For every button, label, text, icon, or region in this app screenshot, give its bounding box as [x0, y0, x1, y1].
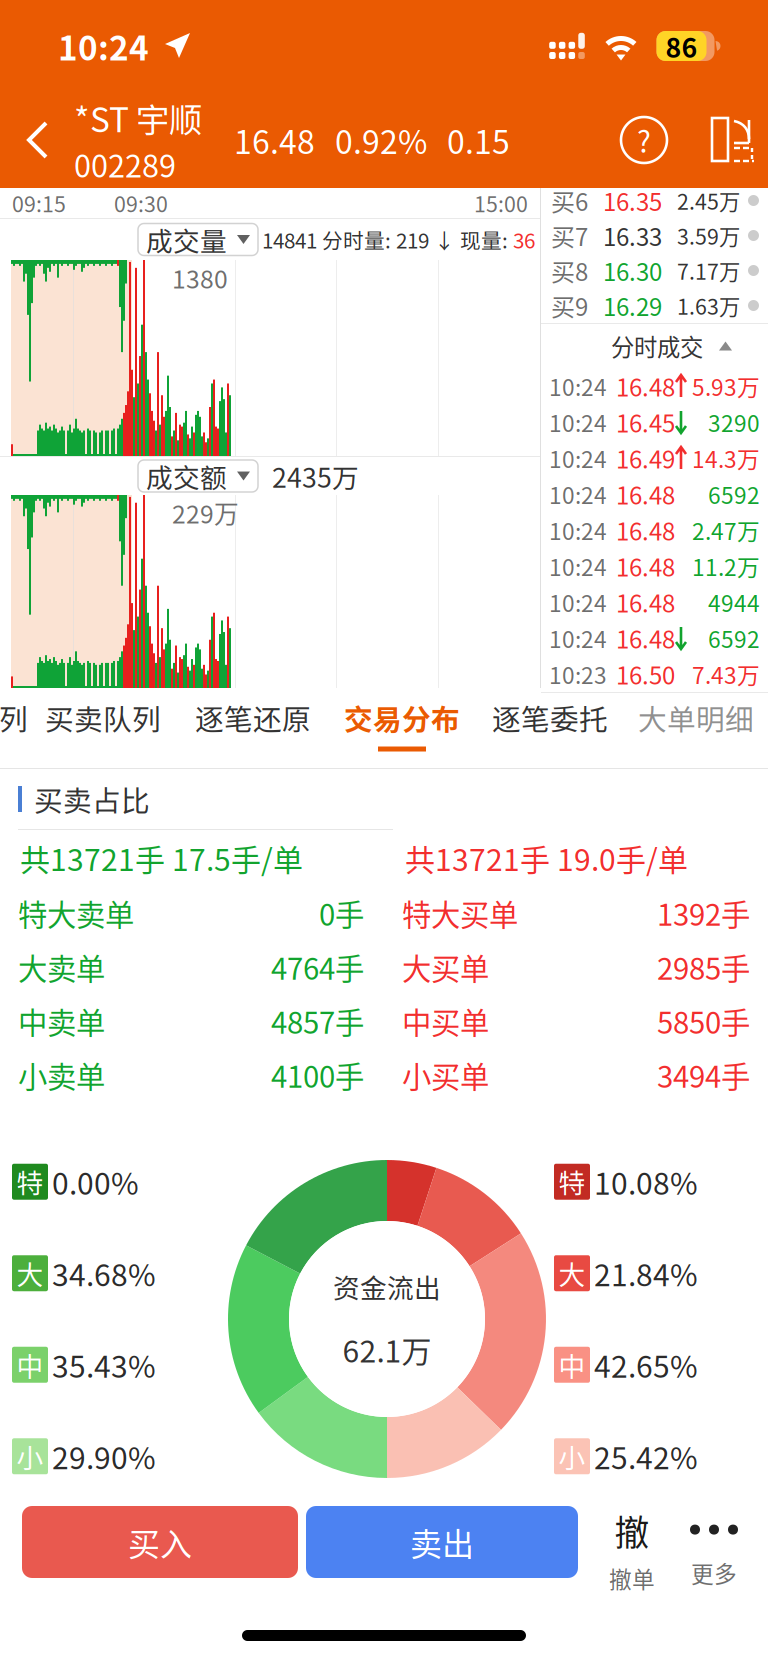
staticText: 大 [558, 1254, 585, 1292]
staticText: 36 [513, 224, 535, 254]
button[interactable]: 买卖队列 [28, 679, 178, 777]
staticText: 0.00% [52, 1160, 139, 1203]
staticText: 列 [0, 697, 28, 738]
staticText: ? [637, 119, 651, 161]
staticText: 229万 [172, 495, 239, 531]
staticText: 16.35 [603, 183, 662, 218]
staticText: 成交额 [146, 457, 227, 495]
staticText: 共13721手 19.0手/单 [405, 836, 688, 880]
staticText: 10:24 [549, 622, 607, 654]
staticText: 10:24 [549, 442, 607, 474]
staticText: 特大买单 [402, 892, 518, 934]
button[interactable]: 成交额 [138, 460, 258, 492]
staticText: 小买单 [402, 1054, 489, 1096]
staticText: 0手 [319, 892, 364, 934]
staticText: 1392手 [657, 892, 750, 934]
staticText: 11.2万 [692, 550, 760, 582]
staticText: 逐笔委托 [492, 697, 608, 738]
staticText: 3.59万 [677, 220, 740, 251]
staticText: 16.48 [616, 585, 675, 619]
staticText: 中 [558, 1345, 585, 1384]
staticText: 14.3万 [692, 442, 760, 474]
button[interactable]: 逐笔还原 [178, 679, 328, 777]
button[interactable]: 分时成交 [541, 324, 768, 368]
staticText: 16.30 [603, 253, 662, 288]
staticText: 小卖单 [18, 1054, 105, 1096]
staticText: 7.43万 [692, 658, 760, 690]
button[interactable]: 买入 [22, 1506, 298, 1578]
staticText: 逐笔还原 [195, 697, 311, 738]
staticText: 29.90% [52, 1435, 156, 1478]
staticText: 买卖占比 [34, 778, 150, 820]
staticText: 10:24 [549, 586, 607, 618]
staticText: 10:24 [58, 22, 149, 70]
staticText: 16.48 [616, 549, 675, 583]
button[interactable]: Back [0, 92, 74, 188]
button[interactable]: Layout options [696, 111, 758, 169]
staticText: 中卖单 [18, 1000, 105, 1042]
staticText: 2435万 [272, 457, 359, 495]
button[interactable]: 卖出 [306, 1506, 578, 1578]
staticText: 10:24 [549, 406, 607, 438]
staticText: 买9 [551, 288, 588, 323]
button[interactable]: 交易分布 [328, 679, 476, 759]
staticText: 34.68% [52, 1251, 156, 1295]
staticText: 6592 [708, 622, 760, 654]
staticText: 16.48 [616, 513, 675, 547]
staticText: 4944 [708, 586, 760, 618]
staticText: 买6 [551, 183, 588, 218]
staticText: 0.92% [335, 117, 427, 163]
staticText: 16.48 [234, 117, 315, 163]
staticText: 25.42% [594, 1435, 698, 1478]
staticText: 特 [558, 1162, 585, 1201]
staticText: 14841 分时量: 219 ↓ 现量: [262, 224, 513, 254]
staticText: 大 [16, 1254, 43, 1292]
staticText: 62.1万 [342, 1328, 431, 1371]
staticText: 15:00 [474, 188, 528, 218]
staticText: 09:30 [114, 188, 168, 218]
staticText: 3290 [708, 406, 760, 438]
staticText: 小 [16, 1437, 43, 1476]
staticText: 特 [16, 1162, 43, 1201]
staticText: 0.15 [447, 117, 510, 163]
staticText: 16.29 [603, 288, 662, 323]
staticText: 16.48 [616, 369, 675, 403]
staticText: 特大卖单 [18, 892, 134, 934]
staticText: 成交量 [146, 220, 227, 259]
staticText: 4764手 [271, 946, 364, 988]
staticText: 2.47万 [692, 514, 760, 546]
staticText: 42.65% [594, 1343, 698, 1386]
button[interactable]: 成交量 [138, 223, 258, 255]
staticText: 21.84% [594, 1251, 698, 1295]
staticText: 7.17万 [677, 255, 740, 286]
staticText: 16.49 [616, 441, 675, 475]
staticText: 002289 [74, 142, 176, 186]
staticText: 1380 [172, 260, 228, 296]
staticText: 更多 [691, 1556, 737, 1589]
staticText: 16.50 [616, 657, 675, 691]
staticText: 分时成交 [611, 329, 703, 363]
staticText: 买8 [551, 253, 588, 288]
staticText: 10:24 [549, 550, 607, 582]
staticText: 16.33 [603, 218, 662, 253]
staticText: 10:23 [549, 658, 607, 690]
staticText: 小 [558, 1437, 585, 1476]
staticText: 买卖队列 [45, 697, 161, 738]
staticText: 买7 [551, 218, 588, 253]
staticText: 卖出 [410, 1519, 474, 1565]
staticText: 3494手 [657, 1054, 750, 1096]
staticText: 5850手 [657, 1000, 750, 1042]
button[interactable]: 撤 [600, 1506, 664, 1592]
button[interactable]: Help [606, 102, 682, 178]
staticText: 16.45 [616, 405, 675, 439]
staticText: 中买单 [402, 1000, 489, 1042]
button[interactable]: 逐笔委托 [476, 679, 624, 777]
staticText: 4857手 [271, 1000, 364, 1042]
staticText: 交易分布 [344, 697, 460, 738]
staticText: 09:15 [12, 188, 66, 218]
staticText: 16.48 [616, 621, 675, 655]
button[interactable]: 更多 [682, 1506, 746, 1592]
staticText: 35.43% [52, 1343, 156, 1386]
staticText: 大卖单 [18, 946, 105, 988]
staticText: 资金流出 [333, 1267, 441, 1306]
